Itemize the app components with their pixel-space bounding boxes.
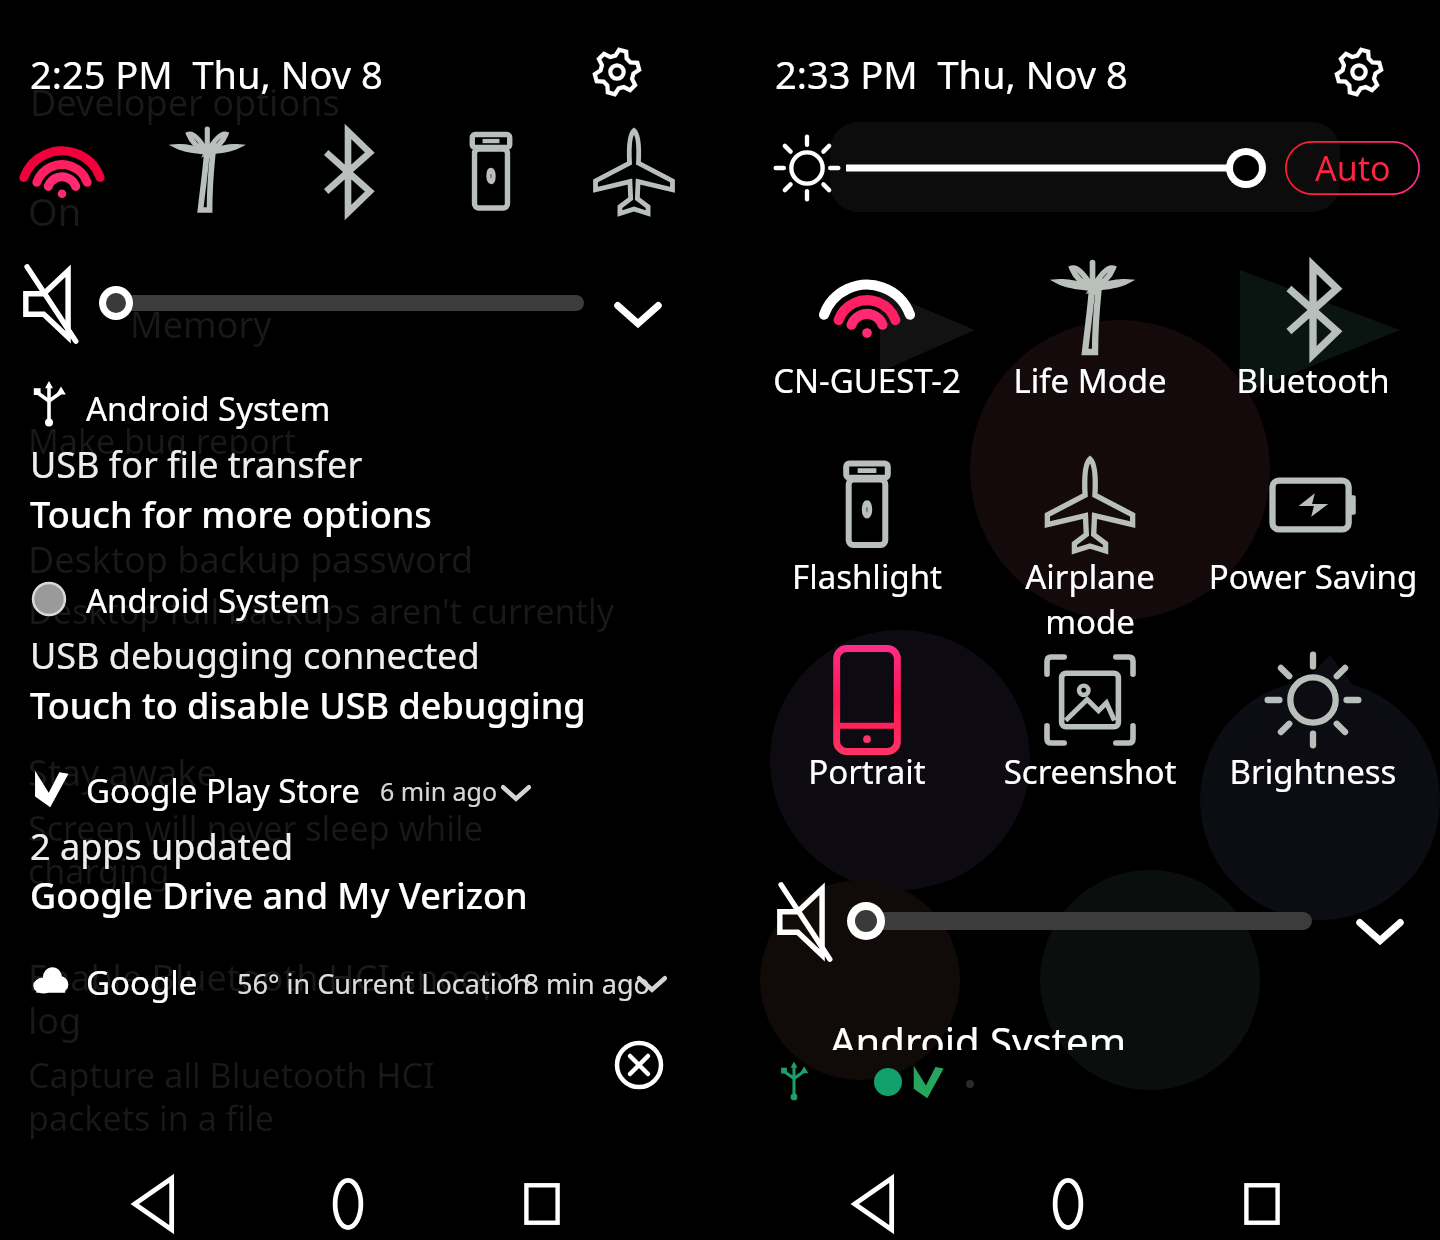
staticText: Stay awake bbox=[28, 748, 217, 797]
button[interactable] bbox=[980, 252, 1200, 400]
staticText: Airplane mode bbox=[980, 554, 1200, 644]
staticText: 2:25 PM Thu, Nov 8 bbox=[30, 48, 383, 100]
staticText: Memory bbox=[130, 300, 272, 349]
button[interactable]: Mute bbox=[18, 268, 90, 340]
button[interactable]: Life Mode bbox=[161, 128, 249, 216]
button[interactable]: Bluetooth bbox=[304, 128, 392, 216]
button[interactable] bbox=[1203, 447, 1423, 595]
button[interactable]: Settings bbox=[1328, 41, 1390, 103]
staticText: Brightness bbox=[1203, 749, 1423, 794]
button[interactable] bbox=[0, 378, 690, 538]
staticText: Portrait bbox=[757, 749, 977, 794]
button[interactable] bbox=[0, 760, 690, 922]
button[interactable] bbox=[980, 642, 1200, 790]
button[interactable] bbox=[757, 642, 977, 790]
staticText: Life Mode bbox=[980, 358, 1200, 403]
staticText: Enable Bluetooth HCI snoop bbox=[28, 953, 505, 1002]
button[interactable]: Home bbox=[308, 1164, 388, 1240]
button[interactable] bbox=[757, 447, 977, 595]
staticText: 18 min ago bbox=[508, 965, 650, 1002]
staticText: CN-GUEST-2 bbox=[757, 358, 977, 403]
button[interactable] bbox=[96, 285, 584, 321]
staticText: Android System bbox=[86, 386, 331, 431]
button[interactable]: Expand bbox=[1350, 900, 1410, 960]
button[interactable]: Settings bbox=[586, 41, 648, 103]
button[interactable]: Airplane mode bbox=[590, 128, 678, 216]
staticText: log bbox=[28, 996, 82, 1045]
button[interactable]: Android System bbox=[830, 1014, 1250, 1050]
staticText: Touch for more options bbox=[30, 490, 432, 539]
staticText: Desktop full backups aren't currently bbox=[28, 588, 614, 634]
staticText: Android System bbox=[86, 578, 331, 623]
staticText: Screenshot bbox=[980, 749, 1200, 794]
staticText: Flashlight bbox=[757, 554, 977, 599]
button[interactable] bbox=[1203, 642, 1423, 790]
button[interactable]: Wi-Fi bbox=[18, 128, 106, 216]
button[interactable] bbox=[0, 568, 690, 730]
staticText: 6 min ago bbox=[380, 774, 498, 808]
button[interactable] bbox=[0, 950, 690, 1050]
staticText: packets in a file bbox=[28, 1095, 274, 1141]
staticText: charging bbox=[28, 848, 170, 894]
staticText: Capture all Bluetooth HCI bbox=[28, 1052, 435, 1098]
staticText: Google bbox=[86, 960, 198, 1005]
staticText: Bluetooth bbox=[1203, 358, 1423, 403]
button[interactable]: Mute bbox=[772, 886, 844, 958]
button[interactable]: Recents bbox=[1222, 1164, 1302, 1240]
button[interactable]: Auto bbox=[1285, 141, 1420, 195]
button[interactable]: Home bbox=[1028, 1164, 1108, 1240]
staticText: 56° in Current Location bbox=[237, 965, 530, 1002]
staticText: Screen will never sleep while bbox=[28, 805, 483, 851]
staticText: Google Play Store bbox=[86, 768, 360, 813]
staticText: Android System bbox=[830, 1014, 1127, 1050]
staticText: USB debugging connected bbox=[30, 631, 480, 680]
button[interactable]: Expand bbox=[608, 283, 668, 343]
button[interactable] bbox=[757, 252, 977, 400]
button[interactable]: Clear all notifications bbox=[609, 1035, 669, 1095]
staticText: Desktop backup password bbox=[28, 535, 474, 584]
button[interactable] bbox=[1203, 252, 1423, 400]
staticText: Auto bbox=[1315, 145, 1391, 191]
staticText: On bbox=[28, 185, 82, 237]
button[interactable] bbox=[980, 447, 1200, 595]
button[interactable]: Flashlight bbox=[447, 128, 535, 216]
staticText: Make bug report bbox=[28, 418, 297, 464]
button[interactable]: Back bbox=[836, 1164, 916, 1240]
staticText: 2 apps updated bbox=[30, 822, 294, 871]
staticText: Developer options bbox=[30, 78, 340, 127]
button[interactable] bbox=[842, 902, 1312, 940]
staticText: Power Saving bbox=[1203, 554, 1423, 599]
button[interactable]: Recents bbox=[502, 1164, 582, 1240]
button[interactable] bbox=[842, 150, 1270, 186]
staticText: Google Drive and My Verizon bbox=[30, 871, 528, 920]
staticText: 2:33 PM Thu, Nov 8 bbox=[775, 48, 1128, 100]
staticText: Touch to disable USB debugging bbox=[30, 681, 586, 730]
button[interactable]: Back bbox=[116, 1164, 196, 1240]
staticText: USB for file transfer bbox=[30, 440, 363, 489]
